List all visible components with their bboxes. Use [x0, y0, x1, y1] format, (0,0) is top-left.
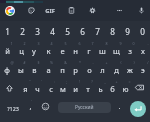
staticText: у	[32, 46, 36, 56]
button[interactable]: GIF	[43, 5, 57, 17]
button[interactable]: .	[113, 99, 125, 113]
staticText: 9	[119, 41, 122, 46]
button[interactable]: ж	[123, 63, 137, 76]
staticText: @	[10, 60, 14, 65]
button[interactable]: ?123	[3, 101, 23, 115]
button[interactable]: ,	[24, 99, 36, 113]
button[interactable]: Русский	[58, 102, 111, 113]
button[interactable]: а	[41, 63, 55, 76]
button[interactable]: ы	[14, 63, 28, 76]
button[interactable]: 3	[30, 24, 45, 38]
button[interactable]: б	[106, 82, 119, 95]
staticText: т	[86, 84, 90, 94]
button[interactable]: Backspace	[133, 81, 146, 94]
button[interactable]: ф	[0, 63, 14, 76]
staticText: -	[92, 60, 94, 65]
button[interactable]: ь	[94, 82, 107, 95]
staticText: -	[147, 41, 149, 46]
button[interactable]: е	[55, 44, 69, 57]
button[interactable]: ю	[119, 82, 132, 95]
staticText: &	[64, 60, 67, 65]
staticText: "	[29, 79, 31, 84]
button[interactable]: 4	[45, 24, 60, 38]
staticText: GIF	[45, 7, 55, 15]
button[interactable]: Google	[5, 6, 15, 16]
button[interactable]: з	[123, 44, 137, 57]
button[interactable]: Voice input	[137, 6, 146, 15]
button[interactable]: в	[27, 63, 41, 76]
button[interactable]: 7	[90, 24, 105, 38]
button[interactable]: р	[68, 63, 82, 76]
staticText: Русский	[75, 104, 94, 111]
staticText: '	[41, 79, 42, 84]
staticText: ю	[122, 84, 129, 94]
staticText: /	[147, 60, 149, 65]
button[interactable]: 8	[105, 24, 120, 38]
staticText: в	[32, 65, 37, 75]
button[interactable]: о	[82, 63, 96, 76]
button[interactable]: Emoji	[40, 101, 51, 112]
staticText: я	[23, 84, 28, 94]
button[interactable]: й	[0, 44, 14, 57]
staticText: $	[37, 60, 40, 65]
staticText: ы	[18, 65, 24, 75]
staticText: 7	[95, 26, 100, 37]
staticText: ,	[29, 101, 32, 111]
button[interactable]: ц	[14, 44, 28, 57]
staticText: ?	[91, 79, 93, 84]
button[interactable]: 5	[60, 24, 75, 38]
staticText: щ	[113, 46, 120, 56]
staticText: +	[105, 60, 108, 65]
staticText: ч	[35, 84, 40, 94]
staticText: .	[118, 101, 121, 111]
staticText: э	[141, 65, 145, 75]
staticText: й	[5, 46, 10, 56]
button[interactable]: п	[55, 63, 69, 76]
button[interactable]: 9	[120, 24, 135, 38]
button[interactable]: Enter	[130, 101, 146, 117]
button[interactable]: ч	[31, 82, 44, 95]
staticText: 0	[140, 26, 145, 37]
staticText: 3	[37, 41, 40, 46]
button[interactable]: г	[82, 44, 96, 57]
button[interactable]: д	[109, 63, 123, 76]
button[interactable]: и	[69, 82, 82, 95]
button[interactable]: 2	[15, 24, 30, 38]
button[interactable]: 6	[75, 24, 90, 38]
staticText: :	[54, 79, 55, 84]
button[interactable]: More options	[115, 6, 124, 15]
button[interactable]: э	[136, 63, 150, 76]
staticText: б	[110, 84, 115, 94]
button[interactable]: Stickers	[27, 6, 36, 15]
staticText: о	[87, 65, 92, 75]
staticText: !	[79, 79, 80, 84]
staticText: д	[114, 65, 119, 75]
button[interactable]: м	[56, 82, 69, 95]
staticText: 6	[78, 41, 81, 46]
button[interactable]: Shift	[4, 83, 15, 94]
staticText: ь	[98, 84, 103, 94]
button[interactable]: 0	[135, 24, 150, 38]
staticText: 8	[105, 41, 108, 46]
button[interactable]: с	[44, 82, 57, 95]
staticText: ?123	[7, 105, 19, 112]
staticText: м	[60, 84, 66, 94]
button[interactable]: ш	[95, 44, 109, 57]
button[interactable]: 1	[0, 24, 15, 38]
button[interactable]: я	[19, 82, 32, 95]
staticText: 8	[110, 26, 115, 37]
button[interactable]: к	[41, 44, 55, 57]
button[interactable]: Settings	[88, 6, 97, 15]
button[interactable]: Clipboard	[67, 6, 76, 15]
staticText: 2	[23, 41, 26, 46]
staticText: ж	[127, 65, 133, 75]
button[interactable]: л	[95, 63, 109, 76]
button[interactable]: х	[136, 44, 150, 57]
button[interactable]: н	[68, 44, 82, 57]
staticText: #	[23, 60, 26, 65]
staticText: 3	[35, 26, 40, 37]
button[interactable]: т	[81, 82, 94, 95]
button[interactable]: у	[27, 44, 41, 57]
staticText: н	[73, 46, 78, 56]
button[interactable]: щ	[109, 44, 123, 57]
